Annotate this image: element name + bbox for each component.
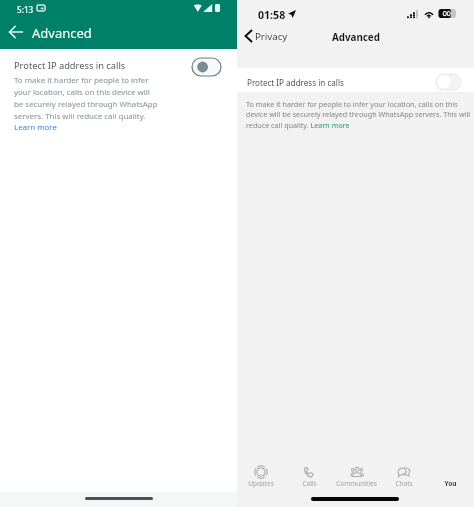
button[interactable]: Communities xyxy=(333,465,380,488)
staticText: You xyxy=(444,479,457,488)
button[interactable]: To make it harder for people to infer yo… xyxy=(246,99,471,130)
button[interactable]: Chats xyxy=(380,465,427,488)
button[interactable]: You xyxy=(427,465,474,488)
other: Protect IP address in calls switch xyxy=(436,74,461,90)
button[interactable]: Protect IP address in calls toggle xyxy=(192,58,221,76)
staticText: 01:58 xyxy=(258,8,286,22)
staticText: Updates xyxy=(248,479,274,488)
staticText: Privacy xyxy=(255,30,288,43)
button[interactable]: Back xyxy=(6,22,26,42)
staticText: Advanced xyxy=(332,31,380,44)
staticText: Communities xyxy=(336,479,377,488)
staticText: Advanced xyxy=(32,24,92,42)
button[interactable]: Learn more xyxy=(14,122,57,133)
button[interactable]: Calls xyxy=(285,465,333,488)
staticText: Calls xyxy=(302,479,317,488)
button[interactable]: Updates xyxy=(237,465,285,488)
staticText: Protect IP address in calls xyxy=(247,77,344,88)
button[interactable]: Privacy xyxy=(244,29,288,43)
staticText: To make it harder for people to infer yo… xyxy=(14,75,158,121)
button[interactable]: Protect IP address in calls xyxy=(237,68,474,92)
staticText: 5:13 xyxy=(17,4,34,15)
staticText: Protect IP address in calls xyxy=(14,59,126,72)
staticText: Chats xyxy=(395,479,413,488)
